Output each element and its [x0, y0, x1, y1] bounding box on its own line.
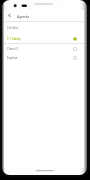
button[interactable]: Explore [4, 53, 84, 62]
button[interactable]: Back [4, 10, 14, 21]
staticText: Check 2 [7, 47, 18, 51]
staticText: Agenda [17, 14, 30, 18]
button[interactable]: 1.1 Safety [4, 34, 84, 43]
staticText: Explore [7, 56, 18, 60]
staticText: Checklist [7, 26, 19, 30]
button[interactable]: Check 2 [4, 44, 84, 53]
staticText: 1.1 Safety [7, 37, 21, 41]
